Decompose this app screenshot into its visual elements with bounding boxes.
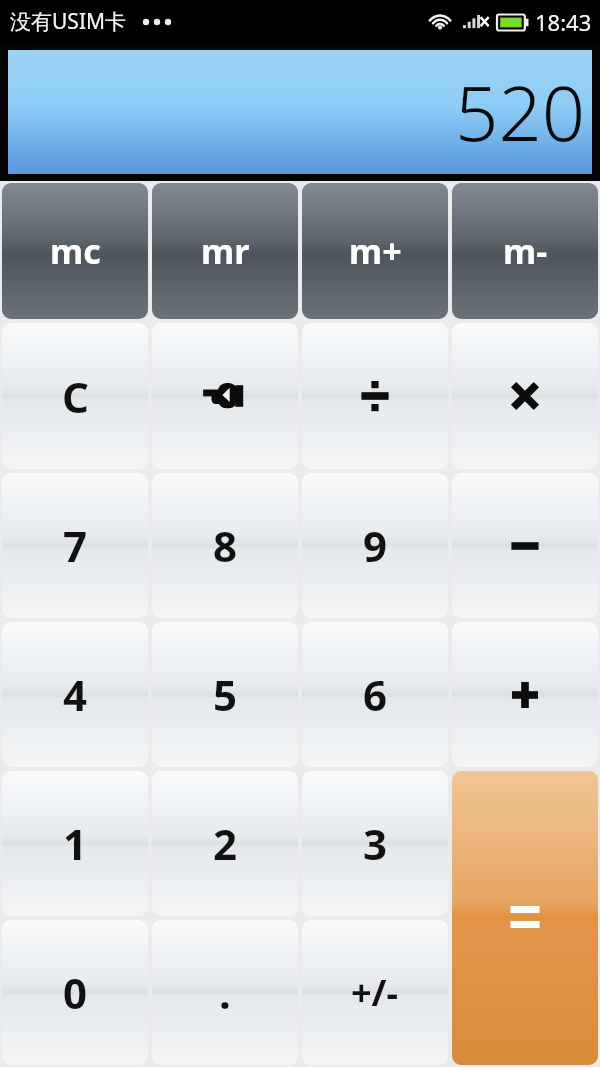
staticText: . [219,964,231,1021]
staticText: 2 [213,815,238,872]
staticText: 1 [63,815,88,872]
button[interactable]: 9 [302,473,448,618]
button[interactable]: . [152,920,298,1065]
button[interactable]: 7 [2,473,148,618]
staticText: C [62,368,89,425]
staticText: 3 [363,815,388,872]
button[interactable]: 8 [152,473,298,618]
button[interactable]: m- [452,183,598,319]
staticText: mr [201,228,250,274]
staticText: 5 [213,666,238,723]
staticText: 0 [63,964,88,1021]
staticText: 18:43 [535,7,592,37]
button[interactable]: +/- [302,920,448,1065]
staticText: 9 [363,517,388,574]
button[interactable]: Backspace [152,323,298,469]
button[interactable]: Divide [302,323,448,469]
staticText: 8 [213,517,238,574]
button[interactable]: Multiply [452,323,598,469]
staticText: 没有USIM卡 [10,7,127,36]
button[interactable]: 0 [2,920,148,1065]
staticText: 4 [63,666,88,723]
button[interactable]: 5 [152,622,298,767]
button[interactable]: 2 [152,771,298,916]
button[interactable]: 1 [2,771,148,916]
button[interactable]: mr [152,183,298,319]
staticText: 7 [63,517,88,574]
button[interactable]: 3 [302,771,448,916]
staticText: 6 [363,666,388,723]
staticText: m+ [349,228,402,274]
staticText: m- [503,228,548,274]
staticText: +/- [351,968,399,1017]
button[interactable]: 4 [2,622,148,767]
button[interactable]: mc [2,183,148,319]
staticText: mc [50,228,101,274]
button[interactable]: Plus [452,622,598,767]
staticText: 520 [455,60,586,164]
button[interactable]: m+ [302,183,448,319]
button[interactable]: 6 [302,622,448,767]
button[interactable]: Equals [452,771,598,1065]
button[interactable]: Minus [452,473,598,618]
button[interactable]: C [2,323,148,469]
